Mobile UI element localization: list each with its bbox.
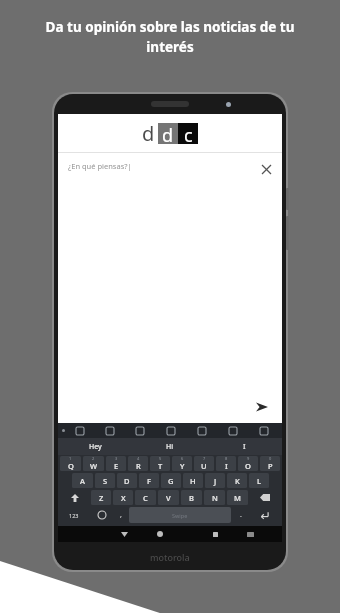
staticText: R <box>136 461 141 471</box>
button[interactable]: Switch keyboard <box>233 526 268 542</box>
button[interactable]: More <box>62 429 65 432</box>
button[interactable]: 4 <box>128 456 148 471</box>
staticText: 0 <box>269 456 272 461</box>
button[interactable]: H <box>183 473 203 488</box>
button[interactable]: F <box>139 473 159 488</box>
staticText: 2 <box>92 456 95 461</box>
staticText: B <box>189 493 194 503</box>
button[interactable]: Close <box>258 161 274 177</box>
staticText: I <box>225 461 228 471</box>
staticText: S <box>103 476 108 486</box>
staticText: Q <box>68 461 74 471</box>
button[interactable]: d <box>142 120 198 147</box>
button[interactable]: X <box>113 490 133 505</box>
staticText: F <box>147 476 151 486</box>
staticText: Swipe <box>172 512 188 519</box>
staticText: 4 <box>137 456 140 461</box>
staticText: K <box>235 476 240 486</box>
button[interactable]: V <box>158 490 179 505</box>
staticText: D <box>124 476 130 486</box>
button[interactable]: Home <box>142 526 177 542</box>
staticText: A <box>80 476 85 486</box>
staticText: d <box>162 123 174 144</box>
staticText: X <box>121 493 126 503</box>
button[interactable]: Tool 1 <box>95 423 125 438</box>
button[interactable]: 5 <box>150 456 170 471</box>
button[interactable]: 9 <box>238 456 258 471</box>
staticText: Z <box>99 493 104 503</box>
staticText: N <box>212 493 218 503</box>
staticText: 5 <box>159 456 162 461</box>
staticText: J <box>214 476 217 486</box>
button[interactable]: 7 <box>194 456 214 471</box>
staticText: I <box>243 442 246 452</box>
button[interactable]: Recents <box>198 526 233 542</box>
button[interactable]: J <box>205 473 225 488</box>
button[interactable]: 123 <box>59 507 89 523</box>
staticText: Da tu opinión sobre las noticias de tu i… <box>22 18 318 56</box>
button[interactable]: 3 <box>106 456 126 471</box>
staticText: ¿En qué piensas?| <box>68 161 258 171</box>
staticText: d <box>142 120 155 147</box>
staticText: motorola <box>150 551 190 563</box>
button[interactable]: Tool 2 <box>125 423 155 438</box>
button[interactable]: Tool 3 <box>155 423 186 438</box>
staticText: T <box>158 461 163 471</box>
button[interactable]: Emoji <box>89 507 114 523</box>
staticText: V <box>166 493 171 503</box>
staticText: Y <box>180 461 185 471</box>
button[interactable]: Send <box>252 397 272 417</box>
button[interactable]: . <box>233 507 248 523</box>
staticText: 1 <box>69 456 72 461</box>
button[interactable]: Backspace <box>249 489 281 506</box>
staticText: P <box>268 461 273 471</box>
staticText: G <box>168 476 174 486</box>
staticText: 8 <box>225 456 228 461</box>
staticText: O <box>245 461 251 471</box>
staticText: E <box>114 461 119 471</box>
button[interactable]: Shift <box>59 489 90 506</box>
button[interactable]: Enter <box>248 507 281 523</box>
button[interactable]: N <box>204 490 225 505</box>
button[interactable]: M <box>227 490 248 505</box>
staticText: . <box>240 510 242 520</box>
staticText: 3 <box>115 456 118 461</box>
button[interactable]: 8 <box>216 456 236 471</box>
button[interactable]: Hi <box>132 438 207 455</box>
button[interactable]: Tool 0 <box>65 423 95 438</box>
button[interactable]: D <box>117 473 137 488</box>
button[interactable]: Tool 5 <box>217 423 248 438</box>
button[interactable]: 1 <box>60 456 81 471</box>
staticText: 123 <box>69 512 79 519</box>
button[interactable]: 0 <box>260 456 280 471</box>
staticText: C <box>143 493 148 503</box>
staticText: c <box>184 123 193 144</box>
staticText: , <box>120 510 122 520</box>
button[interactable]: S <box>95 473 115 488</box>
staticText: M <box>234 493 241 503</box>
staticText: 9 <box>247 456 250 461</box>
button[interactable]: I <box>207 438 282 455</box>
staticText: Hey <box>89 442 102 452</box>
button[interactable]: G <box>161 473 181 488</box>
staticText: 6 <box>181 456 184 461</box>
button[interactable]: L <box>249 473 269 488</box>
button[interactable]: K <box>227 473 247 488</box>
staticText: H <box>190 476 196 486</box>
button[interactable]: Hey <box>58 438 132 455</box>
button[interactable]: Tool 4 <box>186 423 217 438</box>
staticText: Hi <box>166 442 174 452</box>
button[interactable]: Space <box>129 507 231 523</box>
button[interactable]: A <box>72 473 93 488</box>
button[interactable]: C <box>135 490 156 505</box>
staticText: L <box>257 476 262 486</box>
button[interactable]: B <box>181 490 202 505</box>
button[interactable]: 6 <box>172 456 192 471</box>
button[interactable]: , <box>114 507 127 523</box>
staticText: U <box>201 461 207 471</box>
button[interactable]: Z <box>91 490 111 505</box>
button[interactable]: 2 <box>83 456 104 471</box>
staticText: W <box>90 461 98 471</box>
button[interactable]: Tool 6 <box>248 423 279 438</box>
button[interactable]: Back <box>107 526 142 542</box>
